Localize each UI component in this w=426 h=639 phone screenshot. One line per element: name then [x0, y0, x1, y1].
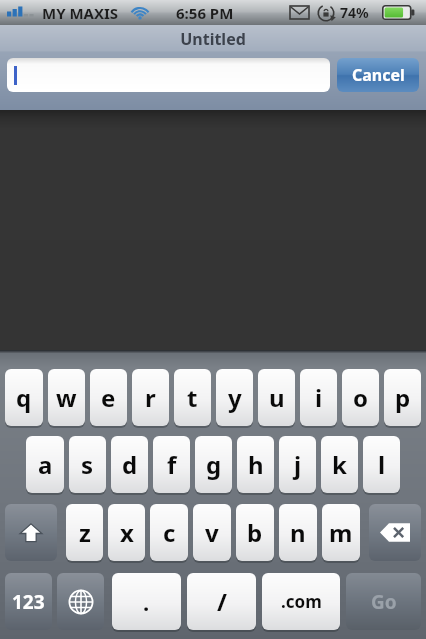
staticText: n — [290, 516, 306, 549]
button[interactable]: x — [108, 504, 145, 561]
other: Rotation lock — [317, 4, 335, 22]
staticText: v — [205, 516, 219, 549]
staticText: a — [38, 448, 53, 481]
button[interactable]: 123 — [5, 573, 52, 630]
staticText: 123 — [12, 589, 45, 615]
staticText: l — [378, 448, 386, 481]
staticText: MY MAXIS — [42, 3, 119, 23]
staticText: g — [206, 448, 222, 481]
button[interactable]: i — [300, 369, 337, 426]
staticText: 74% — [340, 3, 369, 22]
staticText: i — [315, 381, 323, 414]
button[interactable]: z — [66, 504, 103, 561]
staticText: p — [395, 381, 411, 414]
staticText: c — [163, 516, 176, 549]
staticText: z — [79, 516, 91, 549]
button[interactable]: a — [26, 436, 64, 493]
staticText: f — [167, 448, 177, 481]
staticText: w — [56, 381, 77, 414]
staticText: Go — [371, 589, 397, 615]
button[interactable]: g — [195, 436, 232, 493]
button[interactable]: b — [236, 504, 274, 561]
button[interactable]: p — [384, 369, 421, 426]
button[interactable]: Shift — [5, 504, 57, 561]
button[interactable]: .com — [262, 573, 340, 630]
button[interactable]: s — [69, 436, 106, 493]
staticText: j — [294, 448, 302, 481]
button[interactable]: y — [216, 369, 253, 426]
button[interactable]: Cancel — [337, 58, 419, 92]
button[interactable]: h — [237, 436, 274, 493]
button[interactable]: v — [193, 504, 231, 561]
button[interactable]: l — [363, 436, 400, 493]
button[interactable]: Delete — [369, 504, 421, 561]
button[interactable]: Go — [346, 573, 421, 630]
button[interactable]: u — [258, 369, 295, 426]
staticText: s — [81, 448, 94, 481]
staticText: k — [332, 448, 347, 481]
button[interactable]: j — [279, 436, 316, 493]
staticText: d — [122, 448, 138, 481]
button[interactable]: k — [321, 436, 358, 493]
staticText: .com — [281, 590, 322, 613]
button[interactable]: . — [112, 573, 181, 630]
staticText: . — [143, 587, 150, 617]
staticText: h — [248, 448, 264, 481]
staticText: q — [16, 381, 32, 414]
button[interactable] — [7, 58, 330, 92]
staticText: b — [247, 516, 263, 549]
button[interactable]: / — [187, 573, 256, 630]
staticText: x — [120, 516, 134, 549]
staticText: u — [269, 381, 285, 414]
button[interactable]: Change keyboard language — [57, 573, 104, 630]
button[interactable]: d — [111, 436, 148, 493]
staticText: e — [101, 381, 116, 414]
staticText: m — [329, 516, 353, 549]
button[interactable]: t — [174, 369, 211, 426]
staticText: 6:56 PM — [176, 3, 234, 23]
button[interactable]: c — [150, 504, 188, 561]
button[interactable]: m — [322, 504, 360, 561]
staticText: o — [353, 381, 368, 414]
staticText: Untitled — [180, 28, 246, 50]
staticText: y — [228, 381, 242, 414]
other: Mail — [290, 6, 309, 19]
button[interactable]: f — [153, 436, 190, 493]
button[interactable]: w — [48, 369, 85, 426]
staticText: / — [217, 585, 227, 618]
button[interactable]: e — [90, 369, 127, 426]
staticText: t — [187, 381, 198, 414]
staticText: Cancel — [352, 64, 405, 86]
button[interactable]: r — [132, 369, 169, 426]
button[interactable]: n — [279, 504, 317, 561]
button[interactable]: o — [342, 369, 379, 426]
button[interactable]: q — [5, 369, 43, 426]
staticText: r — [145, 381, 156, 414]
